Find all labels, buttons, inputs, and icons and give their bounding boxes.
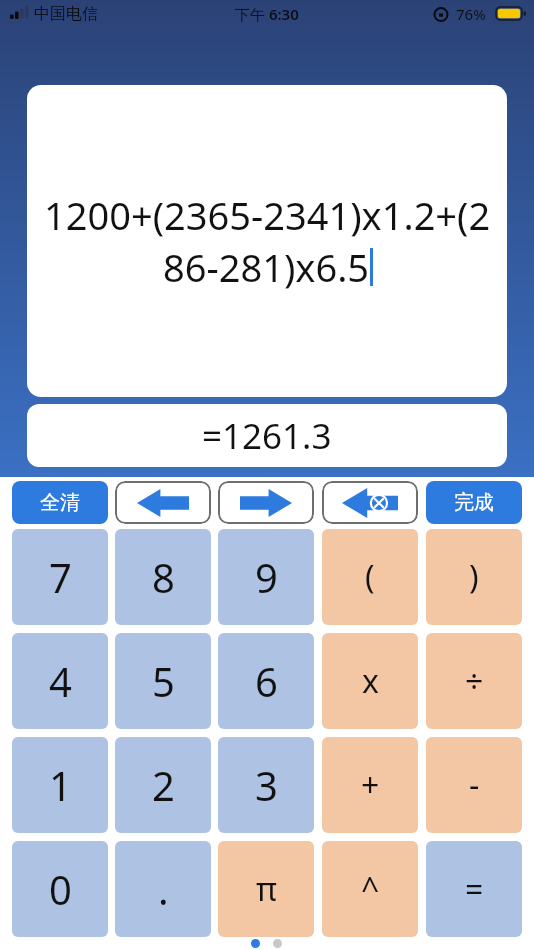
button[interactable]: 2 (115, 737, 211, 833)
staticText: ( (365, 555, 375, 599)
button[interactable] (115, 481, 211, 524)
button[interactable]: 7 (12, 529, 108, 625)
button[interactable]: 1 (12, 737, 108, 833)
staticText: 中国电信 (34, 4, 98, 24)
staticText: - (469, 763, 480, 807)
button[interactable] (218, 481, 314, 524)
button[interactable]: 6 (218, 633, 314, 729)
button[interactable]: x (322, 633, 418, 729)
button[interactable]: = (426, 841, 522, 937)
button[interactable]: 全清 (12, 481, 108, 524)
button[interactable] (322, 481, 418, 524)
button[interactable]: 4 (12, 633, 108, 729)
staticText: = (465, 867, 484, 911)
button[interactable]: . (115, 841, 211, 937)
staticText: 完成 (454, 490, 494, 515)
staticText: 4 (49, 654, 72, 708)
button[interactable]: ( (322, 529, 418, 625)
button[interactable]: 9 (218, 529, 314, 625)
staticText: 全清 (40, 490, 80, 515)
staticText: ^ (361, 867, 380, 911)
button[interactable]: ) (426, 529, 522, 625)
button[interactable]: ÷ (426, 633, 522, 729)
button[interactable]: 3 (218, 737, 314, 833)
staticText: 3 (255, 758, 278, 812)
staticText: 86-281)x6.5 (163, 241, 370, 293)
button[interactable]: - (426, 737, 522, 833)
staticText: x (362, 659, 379, 703)
staticText: =1261.3 (202, 412, 332, 460)
staticText: 76% (456, 4, 486, 24)
staticText: . (158, 862, 169, 916)
staticText: 8 (152, 550, 175, 604)
button[interactable]: ^ (322, 841, 418, 937)
staticText: 6 (255, 654, 278, 708)
button[interactable]: + (322, 737, 418, 833)
staticText: 下午 6:30 (235, 4, 299, 24)
staticText: 5 (152, 654, 175, 708)
staticText: 1 (49, 758, 72, 812)
staticText: π (256, 867, 277, 911)
staticText: + (361, 763, 380, 807)
staticText: 0 (49, 862, 72, 916)
staticText: 2 (152, 758, 175, 812)
button[interactable]: 0 (12, 841, 108, 937)
staticText: 7 (49, 550, 72, 604)
staticText: 9 (255, 550, 278, 604)
button[interactable]: 5 (115, 633, 211, 729)
button[interactable]: 8 (115, 529, 211, 625)
staticText: ÷ (465, 659, 484, 703)
staticText: ) (469, 555, 479, 599)
button[interactable]: 完成 (426, 481, 522, 524)
staticText: 1200+(2365-2341)x1.2+(2 (44, 189, 491, 241)
button[interactable]: π (218, 841, 314, 937)
